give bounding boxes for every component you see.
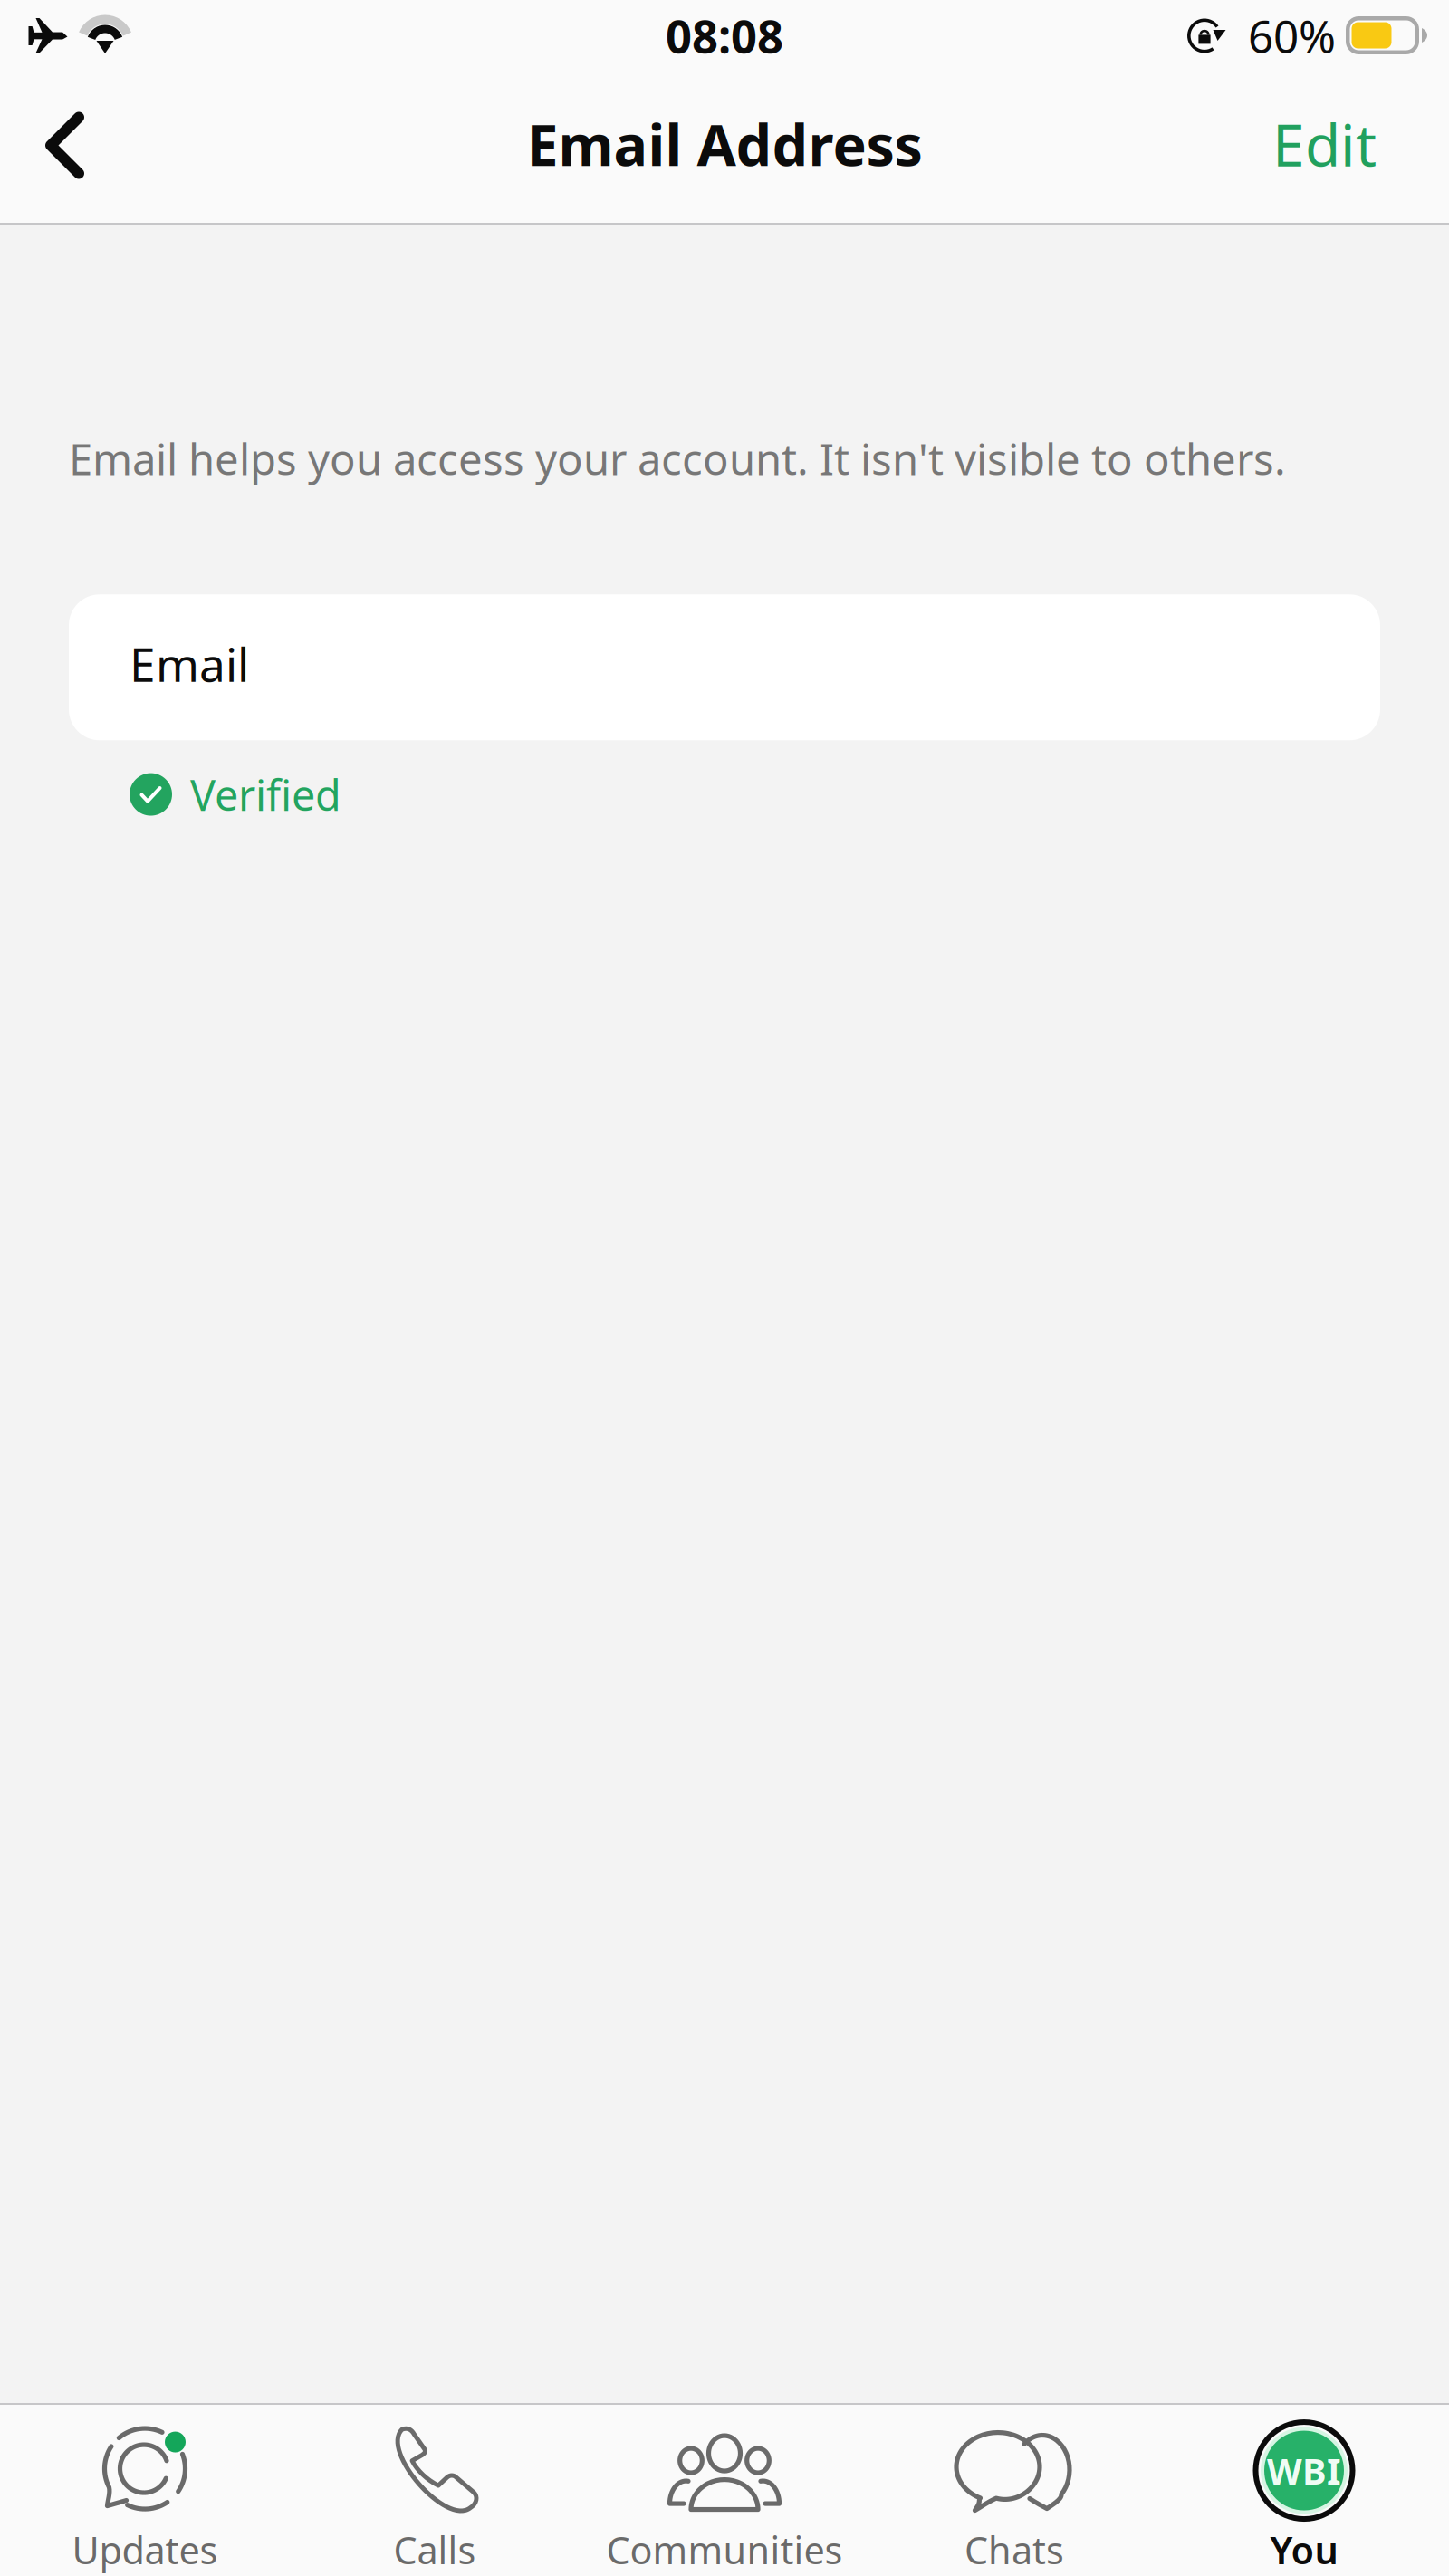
button[interactable]: Calls	[290, 2405, 580, 2576]
staticText: Verified	[190, 766, 341, 823]
staticText: You	[1270, 2525, 1338, 2575]
staticText: Calls	[393, 2525, 476, 2575]
button[interactable]: Back	[0, 84, 115, 204]
staticText: Email	[130, 632, 249, 695]
button[interactable]: Email	[69, 594, 1380, 740]
staticText: Email helps you access your account. It …	[69, 429, 1286, 488]
button[interactable]: Chats	[869, 2405, 1159, 2576]
button[interactable]: Communities	[580, 2405, 869, 2576]
staticText: Edit	[1272, 105, 1377, 184]
button[interactable]: WBI	[1159, 2405, 1449, 2576]
staticText: WBI	[1267, 2446, 1341, 2495]
staticText: 60%	[1248, 5, 1336, 66]
button[interactable]: Updates	[0, 2405, 290, 2576]
staticText: Updates	[72, 2525, 218, 2575]
staticText: Email Address	[527, 105, 922, 183]
staticText: Communities	[606, 2525, 843, 2575]
staticText: Chats	[964, 2525, 1064, 2575]
staticText: 08:08	[666, 4, 783, 67]
button[interactable]: Edit	[1242, 79, 1449, 209]
